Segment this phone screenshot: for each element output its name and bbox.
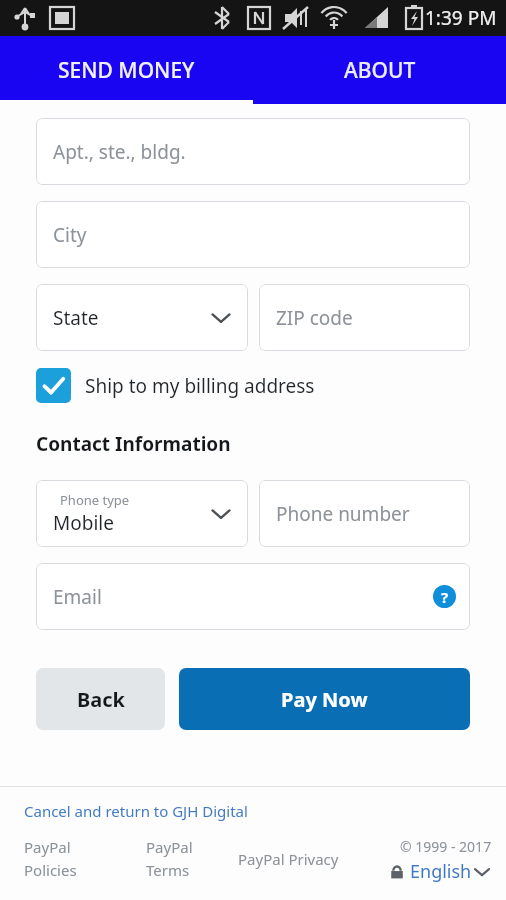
button[interactable]: English	[389, 859, 492, 884]
staticText: Phone number	[276, 501, 410, 527]
button[interactable]: PayPal	[24, 837, 146, 880]
button[interactable]: Help about email	[433, 585, 456, 608]
button[interactable]: Email	[36, 563, 470, 630]
staticText: Email	[53, 584, 102, 610]
button[interactable]: City	[36, 201, 470, 268]
staticText: 1:39 PM	[425, 5, 497, 31]
button[interactable]: Back	[36, 668, 165, 730]
staticText: SEND MONEY	[58, 56, 195, 85]
button[interactable]: Ship to my billing address	[36, 368, 470, 403]
button[interactable]: ZIP code	[259, 284, 470, 351]
button[interactable]: Apt., ste., bldg.	[36, 118, 470, 185]
staticText: ZIP code	[276, 305, 353, 331]
button[interactable]: State	[36, 284, 248, 351]
button[interactable]: Phone type	[36, 480, 248, 547]
button[interactable]: PayPal	[146, 837, 238, 880]
staticText: PayPal	[24, 837, 71, 857]
staticText: Contact Information	[36, 431, 231, 457]
staticText: Ship to my billing address	[85, 373, 315, 399]
button[interactable]: PayPal Privacy	[238, 849, 339, 869]
staticText: Phone type	[60, 491, 130, 509]
staticText: City	[53, 222, 87, 248]
staticText: ABOUT	[344, 56, 416, 85]
staticText: Back	[77, 686, 125, 713]
staticText: © 1999 - 2017	[400, 837, 492, 856]
staticText: State	[53, 305, 99, 331]
staticText: PayPal	[146, 837, 193, 857]
button[interactable]: Cancel and return to GJH Digital	[24, 801, 248, 821]
button[interactable]: ABOUT	[253, 36, 506, 104]
staticText: Terms	[146, 860, 190, 880]
staticText: English	[410, 859, 472, 884]
staticText: Pay Now	[281, 686, 368, 713]
staticText: ?	[441, 587, 449, 607]
button[interactable]: Pay Now	[179, 668, 470, 730]
staticText: Mobile	[53, 510, 114, 536]
button[interactable]: SEND MONEY	[0, 36, 253, 104]
staticText: Policies	[24, 860, 77, 880]
staticText: Apt., ste., bldg.	[53, 139, 186, 165]
button[interactable]: Phone number	[259, 480, 470, 547]
